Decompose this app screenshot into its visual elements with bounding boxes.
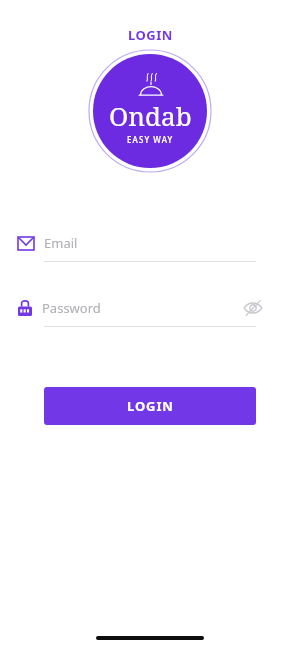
staticText: LOGIN [128, 26, 173, 44]
button[interactable]: Password [0, 295, 300, 327]
staticText: Password [42, 299, 242, 317]
button[interactable]: Email [0, 230, 300, 262]
button[interactable]: Show password [242, 297, 264, 319]
staticText: Email [44, 234, 264, 252]
staticText: EASY WAY [127, 134, 174, 145]
staticText: Ondab [109, 98, 192, 133]
staticText: LOGIN [127, 397, 174, 415]
button[interactable]: LOGIN [44, 387, 256, 425]
